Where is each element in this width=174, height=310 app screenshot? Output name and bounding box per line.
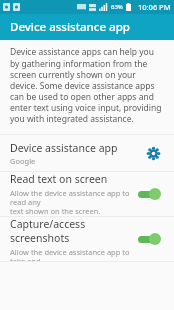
staticText: Allow the device assistance app to take …: [10, 247, 130, 261]
staticText: Google: [10, 156, 36, 166]
button[interactable]: Device assistance app: [0, 135, 174, 171]
staticText: 63%: [111, 3, 123, 11]
button[interactable]: Read text on screen: [136, 184, 164, 204]
button[interactable]: Read text on screen: [0, 172, 174, 216]
staticText: Device assistance app: [10, 19, 130, 35]
staticText: Allow the device assistance app to read …: [10, 188, 130, 216]
staticText: Capture/access screenshots: [10, 217, 130, 245]
staticText: Device assistance apps can help you by g…: [10, 46, 164, 125]
staticText: Device assistance app: [10, 141, 118, 155]
staticText: Read text on screen: [10, 172, 108, 186]
staticText: 10:06 PM: [138, 2, 171, 12]
button[interactable]: Assistance app settings: [142, 142, 164, 164]
button[interactable]: Capture/access screenshots: [136, 229, 164, 249]
button[interactable]: Capture/access screenshots: [0, 217, 174, 261]
